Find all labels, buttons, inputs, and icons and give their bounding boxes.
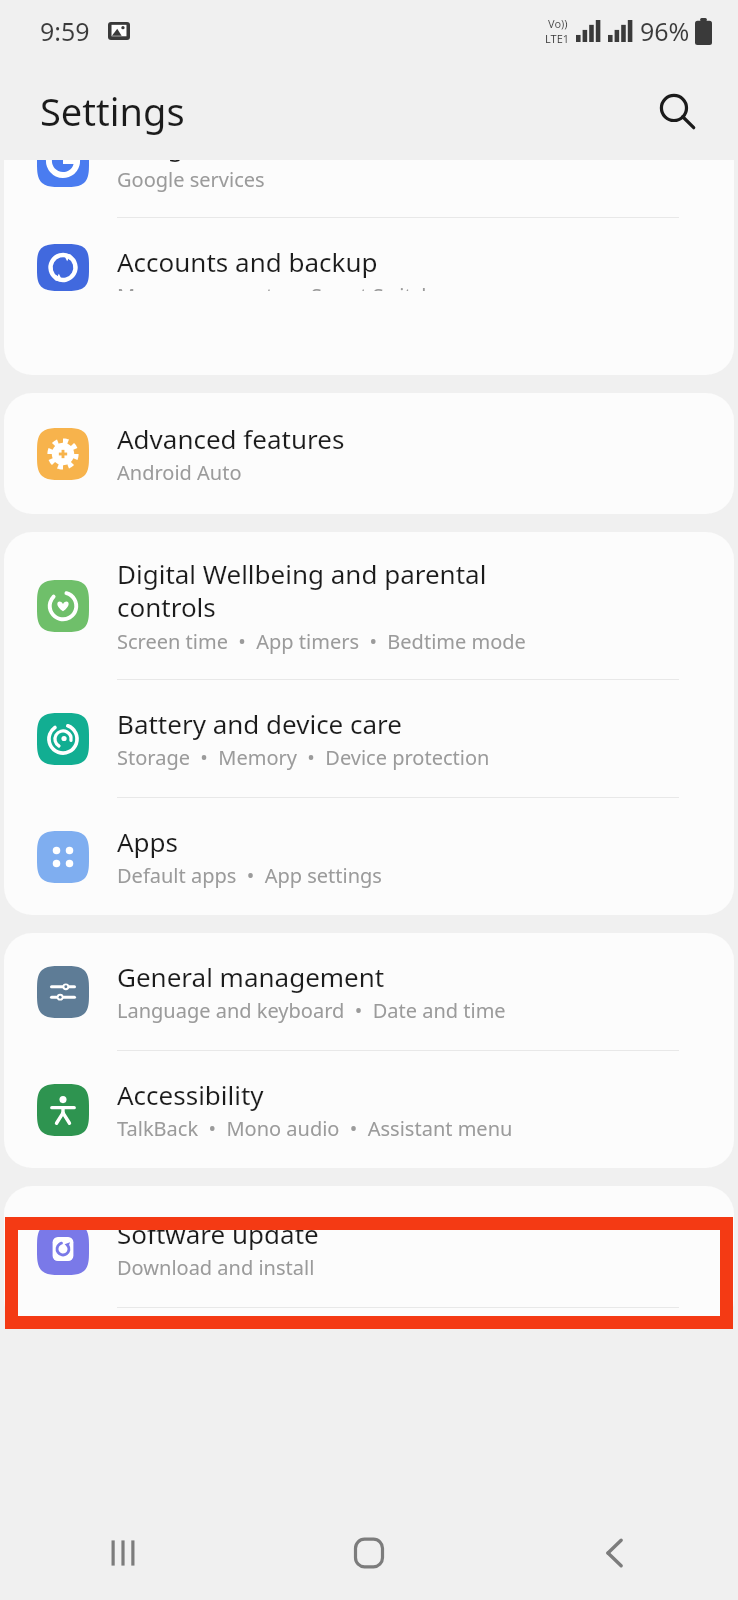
button[interactable]: Google: [4, 160, 734, 217]
staticText: Screen time • App timers • Bedtime mode: [117, 628, 526, 655]
button[interactable]: Accounts and backup: [4, 218, 734, 317]
button[interactable]: Apps: [4, 798, 734, 915]
staticText: LTE1: [545, 31, 570, 46]
staticText: Google services: [117, 166, 265, 193]
staticText: Settings: [40, 85, 185, 137]
staticText: Battery and device care: [117, 706, 402, 741]
staticText: Android Auto: [117, 459, 242, 486]
button[interactable]: Software update: [4, 1186, 734, 1307]
staticText: Apps: [117, 824, 179, 859]
staticText: Default apps • App settings: [117, 862, 382, 889]
button[interactable]: Back: [567, 1505, 663, 1600]
staticText: Manage accounts • Smart Switch: [117, 282, 434, 291]
button[interactable]: Digital Wellbeing and parental controls: [4, 532, 734, 679]
staticText: 9:59: [40, 14, 90, 48]
staticText: Language and keyboard • Date and time: [117, 997, 506, 1024]
button[interactable]: Accessibility: [4, 1051, 734, 1168]
button[interactable]: General management: [4, 933, 734, 1050]
staticText: Accessibility: [117, 1077, 264, 1112]
staticText: Software update: [117, 1216, 319, 1251]
staticText: Accounts and backup: [117, 244, 378, 279]
staticText: Storage • Memory • Device protection: [117, 744, 490, 771]
button[interactable]: Recent apps: [75, 1505, 171, 1600]
button[interactable]: Home: [321, 1505, 417, 1600]
button[interactable]: Battery and device care: [4, 680, 734, 797]
staticText: TalkBack • Mono audio • Assistant menu: [117, 1115, 513, 1142]
staticText: 96%: [640, 14, 690, 48]
button[interactable]: Search: [646, 80, 708, 142]
staticText: Advanced features: [117, 421, 345, 456]
staticText: Download and install: [117, 1254, 315, 1281]
staticText: Google: [117, 160, 205, 163]
button[interactable]: Advanced features: [4, 393, 734, 514]
staticText: Digital Wellbeing and parental controls: [117, 556, 487, 625]
staticText: Vo)): [548, 16, 568, 31]
staticText: General management: [117, 959, 385, 994]
